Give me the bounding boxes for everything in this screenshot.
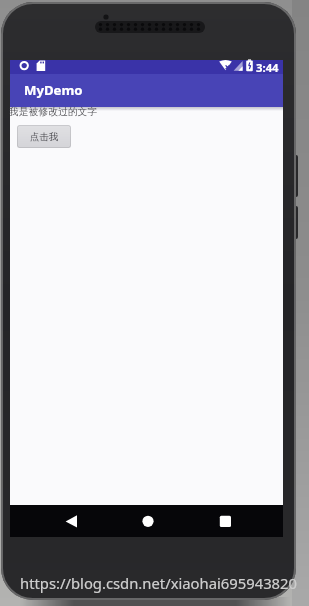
staticText: MyDemo [24,81,83,99]
button[interactable] [137,510,159,532]
staticText: https://blog.csdn.net/xiaohai695943820 [20,573,297,593]
staticText: 3:44 [256,60,279,74]
button[interactable] [60,510,82,532]
button[interactable]: 点击我 [17,125,71,148]
staticText: 我是被修改过的文字 [9,106,98,118]
button[interactable] [214,510,236,532]
staticText: 点击我 [30,131,59,143]
